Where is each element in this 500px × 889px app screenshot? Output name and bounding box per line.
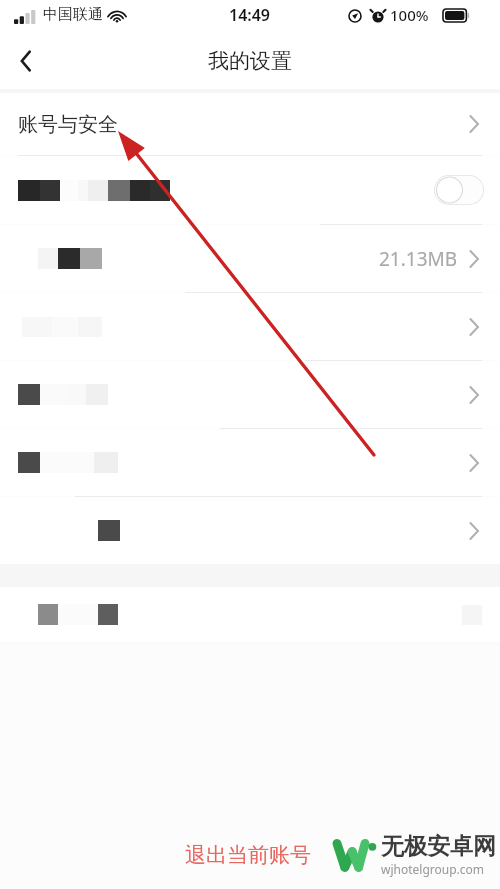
staticText: wjhotelgroup.com	[381, 861, 485, 877]
button[interactable]	[0, 293, 500, 360]
staticText: 100%	[390, 5, 429, 25]
button[interactable]: Toggle	[0, 156, 500, 224]
button[interactable]: Back	[0, 32, 52, 89]
button[interactable]	[0, 429, 500, 496]
button[interactable]	[0, 497, 500, 564]
staticText: 14:49	[229, 4, 271, 26]
staticText: 我的设置	[208, 48, 292, 74]
button[interactable]: 退出当前账号	[185, 842, 311, 868]
staticText: 账号与安全	[18, 112, 118, 137]
button[interactable]: 21.13MB	[0, 225, 500, 292]
staticText: 无极安卓网	[381, 832, 496, 861]
staticText: 21.13MB	[379, 246, 458, 272]
button[interactable]: 账号与安全	[0, 93, 500, 155]
button[interactable]: Toggle	[434, 175, 484, 205]
button[interactable]	[0, 361, 500, 428]
button[interactable]	[0, 587, 500, 642]
staticText: 中国联通	[43, 5, 103, 24]
